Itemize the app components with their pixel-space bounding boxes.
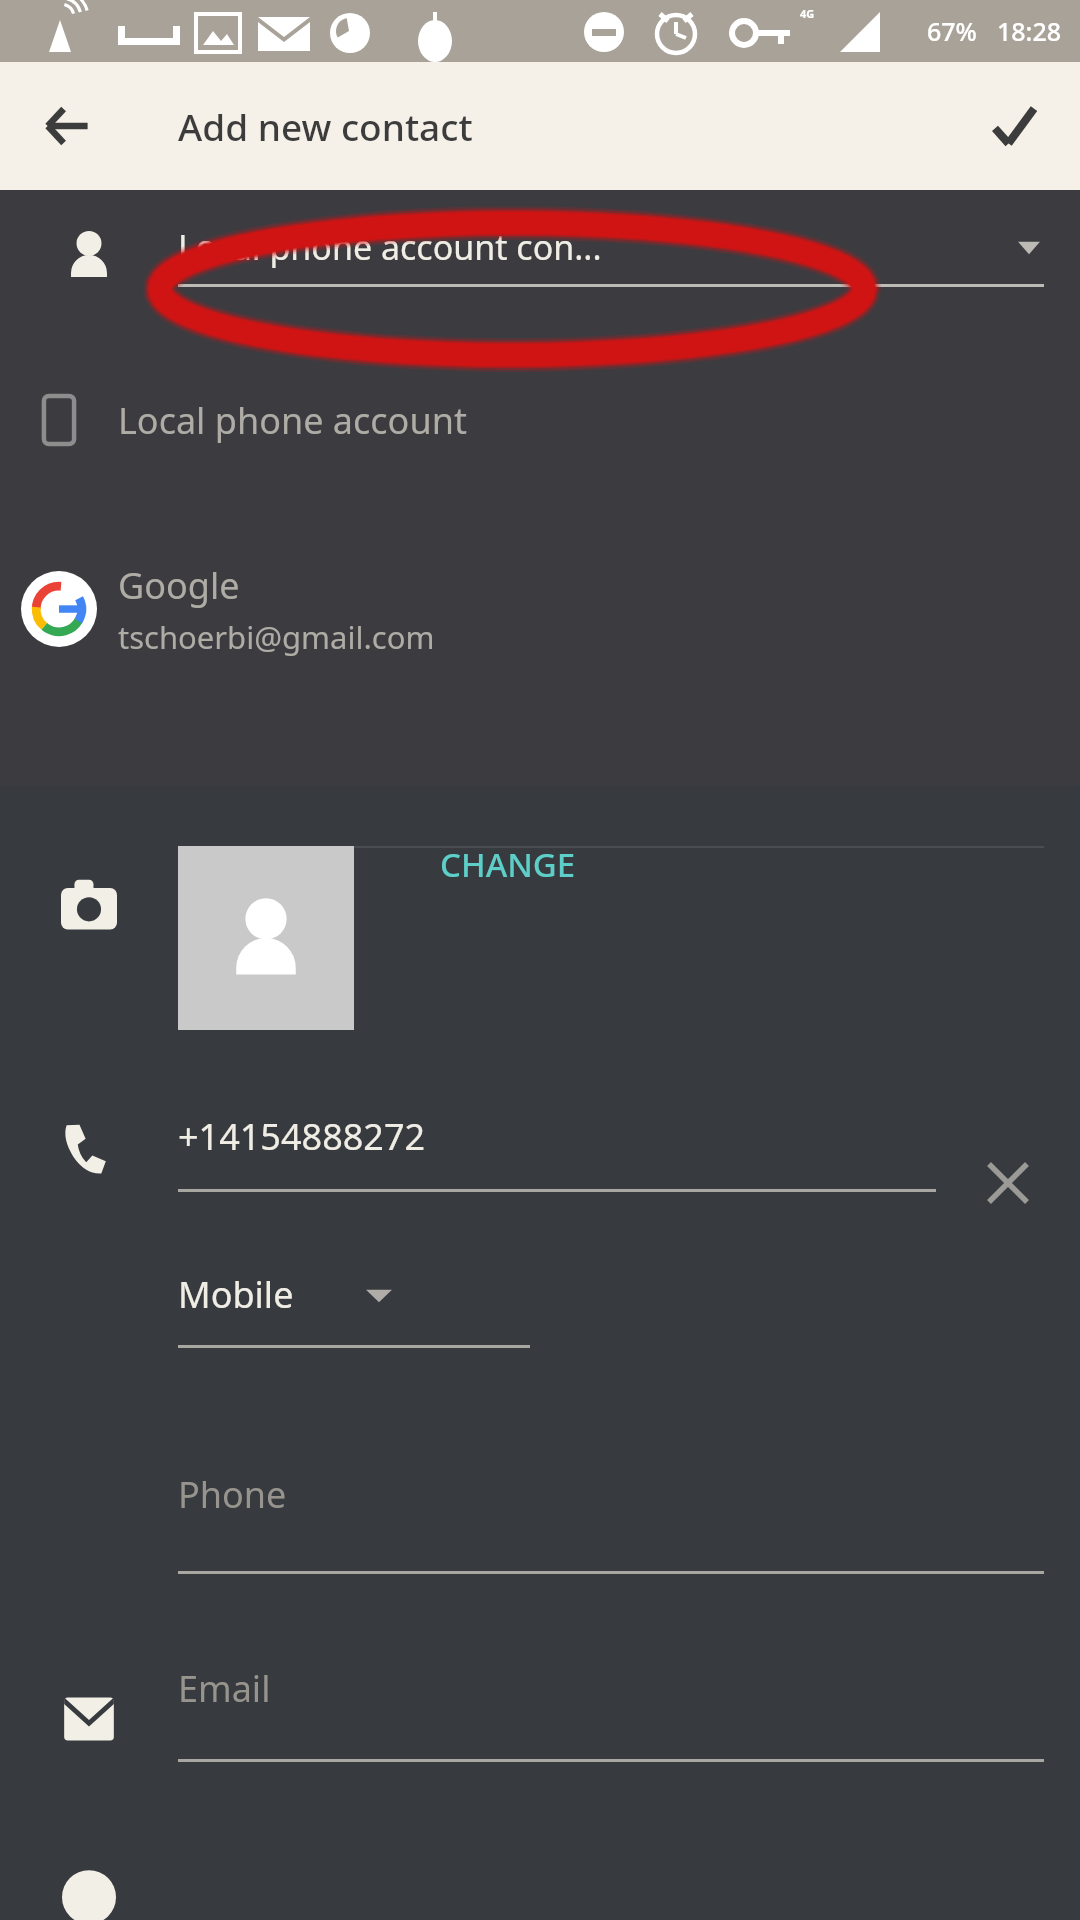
staticText: 4G [800,6,815,21]
staticText: Google [118,561,240,610]
button[interactable]: Local phone account con... [0,190,1080,320]
button[interactable]: Local phone account [0,362,1080,478]
staticText: Local phone account [118,396,467,445]
button[interactable]: Mobile [178,1270,530,1348]
staticText: Mobile [178,1270,294,1319]
staticText: +14154888272 [178,1112,426,1161]
button[interactable]: Google [0,534,1080,684]
staticText: Local phone account con... [178,224,1018,270]
button[interactable]: Email [178,1664,1044,1762]
staticText: Phone [178,1470,287,1519]
button[interactable]: Clear phone number [936,1090,1080,1240]
staticText: CHANGE [440,842,576,887]
button[interactable]: Save contact [972,84,1056,168]
button[interactable]: Navigate up [26,86,106,166]
staticText: 67% [927,14,977,48]
staticText: 18:28 [997,14,1062,48]
button[interactable]: CHANGE [432,834,584,895]
staticText: Add new contact [178,101,473,151]
button[interactable]: Contact photo [178,846,354,1030]
staticText: tschoerbi@gmail.com [118,616,435,658]
staticText: Email [178,1664,271,1713]
button[interactable]: Phone [178,1470,1044,1574]
